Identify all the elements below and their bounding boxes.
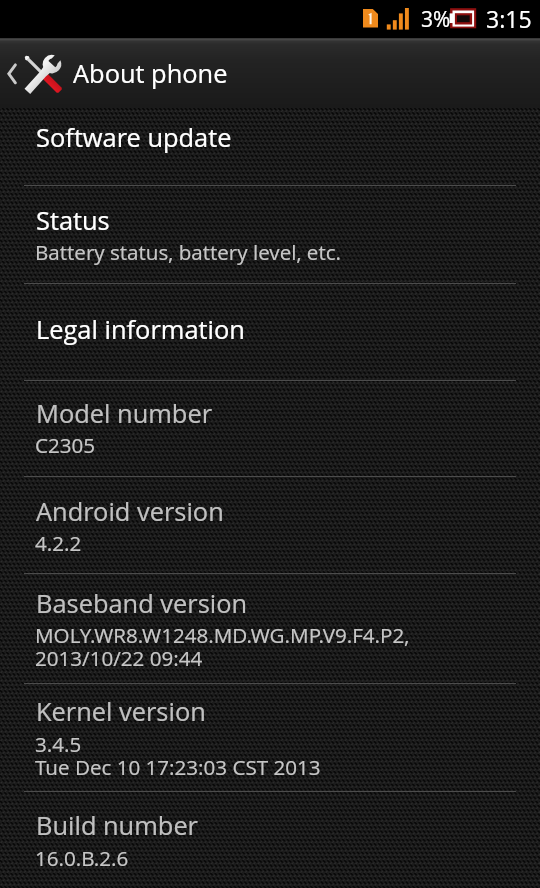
- button[interactable]: Kernel version: [0, 684, 540, 792]
- button[interactable]: Build number: [0, 792, 540, 888]
- staticText: 3%: [421, 5, 451, 34]
- button[interactable]: Status: [0, 186, 540, 284]
- staticText: Android version: [36, 494, 224, 529]
- button[interactable]: Legal information: [0, 284, 540, 381]
- button[interactable]: Baseband version: [0, 574, 540, 684]
- staticText: Battery status, battery level, etc.: [35, 238, 341, 266]
- staticText: Model number: [36, 396, 213, 431]
- staticText: Build number: [36, 808, 198, 843]
- staticText: 16.0.B.2.6: [35, 844, 129, 872]
- staticText: MOLY.WR8.W1248.MD.WG.MP.V9.F4.P2,: [35, 621, 410, 649]
- staticText: C2305: [35, 431, 96, 459]
- staticText: Legal information: [36, 312, 245, 347]
- staticText: Software update: [36, 120, 232, 155]
- staticText: 4.2.2: [35, 529, 82, 557]
- button[interactable]: Navigate up: [0, 38, 540, 108]
- button[interactable]: Android version: [0, 477, 540, 574]
- staticText: Baseband version: [36, 586, 248, 621]
- staticText: Status: [36, 203, 110, 238]
- staticText: Kernel version: [36, 694, 206, 729]
- staticText: 3.4.5: [35, 730, 82, 758]
- button[interactable]: Model number: [0, 381, 540, 477]
- button[interactable]: Software update: [0, 108, 540, 186]
- staticText: Tue Dec 10 17:23:03 CST 2013: [35, 753, 321, 781]
- staticText: About phone: [73, 56, 228, 91]
- staticText: 2013/10/22 09:44: [35, 644, 203, 672]
- staticText: 3:15: [486, 3, 532, 34]
